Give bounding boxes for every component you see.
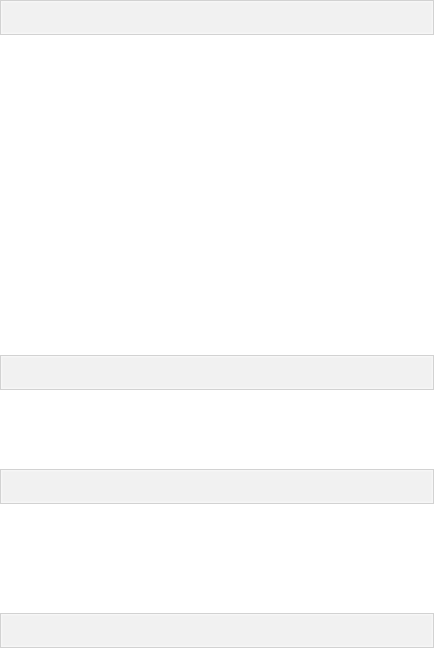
button[interactable]: Row two bbox=[0, 469, 434, 504]
button[interactable]: Top bar bbox=[0, 0, 434, 35]
button[interactable]: Row one bbox=[0, 355, 434, 390]
button[interactable]: Bottom bar bbox=[0, 613, 434, 648]
